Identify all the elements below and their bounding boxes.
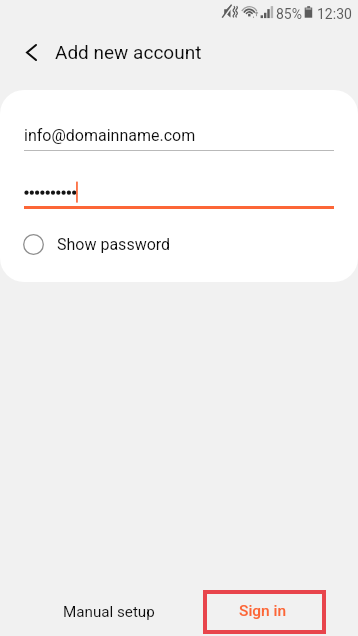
staticText: 12:30: [317, 6, 352, 22]
button[interactable]: Show password: [0, 224, 171, 264]
button[interactable]: Back: [7, 28, 55, 76]
staticText: 85%: [276, 6, 302, 22]
button[interactable]: Manual setup: [35, 590, 183, 634]
button[interactable]: [24, 171, 334, 209]
staticText: Manual setup: [63, 603, 155, 621]
button[interactable]: info@domainname.com: [24, 114, 334, 151]
staticText: Show password: [57, 235, 171, 254]
button[interactable]: Sign in: [203, 590, 326, 634]
staticText: info@domainname.com: [24, 126, 196, 145]
staticText: Add new account: [55, 41, 202, 63]
staticText: Sign in: [239, 602, 287, 620]
